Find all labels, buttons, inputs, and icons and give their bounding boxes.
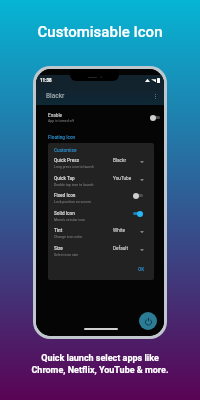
button[interactable]: Power toggle (139, 312, 157, 330)
staticText: Blackr (113, 158, 127, 164)
staticText: Change icon color (54, 235, 83, 239)
staticText: Lock position on screen (54, 200, 92, 204)
button[interactable] (48, 211, 154, 225)
staticText: Size (54, 246, 63, 252)
button[interactable]: Enable (36, 110, 164, 125)
staticText: OK (138, 267, 145, 273)
staticText: White (113, 228, 125, 234)
button[interactable] (48, 193, 154, 207)
staticText: Double tap icon to launch (54, 183, 94, 187)
button[interactable]: OK (135, 264, 148, 276)
staticText: Select icon size (54, 253, 79, 257)
button[interactable] (48, 246, 154, 260)
staticText: Quick launch select apps like (41, 353, 159, 364)
staticText: Long press icon to launch (54, 165, 94, 169)
staticText: Enable (48, 113, 63, 119)
staticText: Chrome, Netflix, YouTube & more. (31, 365, 169, 376)
button[interactable] (48, 158, 154, 172)
staticText: 11:38 (40, 78, 52, 83)
staticText: Customise (54, 148, 77, 154)
button[interactable]: Toggle (133, 192, 143, 199)
staticText: Quick Tap (54, 176, 75, 182)
button[interactable]: More options (150, 91, 161, 102)
staticText: YouTube (113, 176, 132, 182)
staticText: Floating Icon (48, 135, 76, 141)
staticText: Fixed Icon (54, 193, 76, 199)
button[interactable] (48, 228, 154, 242)
button[interactable]: Toggle (150, 114, 160, 121)
staticText: Solid Icon (54, 211, 75, 217)
staticText: Mono's circular icon (54, 218, 85, 222)
staticText: App is turned off (48, 119, 74, 123)
staticText: Default (113, 246, 128, 252)
button[interactable]: Toggle (133, 210, 143, 217)
staticText: Quick Press (54, 158, 80, 164)
staticText: Blackr (46, 92, 65, 100)
button[interactable] (48, 176, 154, 190)
staticText: Tint (54, 228, 63, 234)
staticText: Customisable Icon (0, 23, 200, 41)
